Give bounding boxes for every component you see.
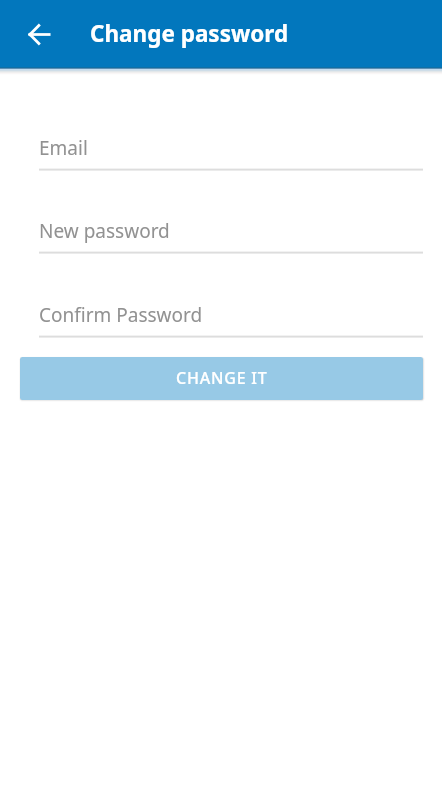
button[interactable]: Confirm Password: [39, 302, 423, 336]
staticText: Email: [39, 135, 88, 161]
button[interactable]: New password: [39, 218, 423, 252]
staticText: Confirm Password: [39, 302, 203, 328]
button[interactable]: Navigate up: [15, 10, 63, 58]
staticText: CHANGE IT: [176, 367, 268, 389]
button[interactable]: Email: [39, 135, 423, 169]
staticText: Change password: [90, 18, 289, 49]
button[interactable]: CHANGE IT: [20, 357, 423, 400]
staticText: New password: [39, 218, 170, 244]
